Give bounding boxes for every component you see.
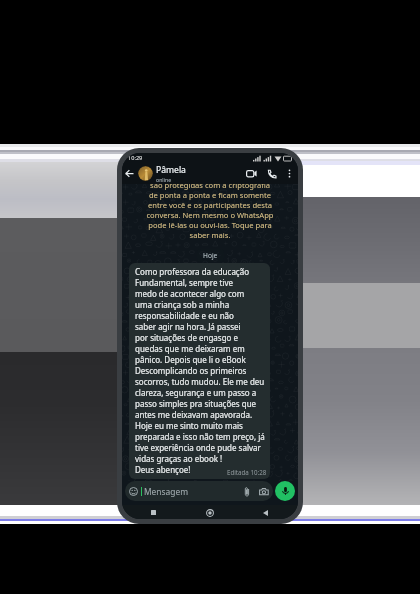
button[interactable]: Record voice message [275, 481, 295, 501]
button[interactable]: são protegidas com a criptografia de pon… [122, 180, 298, 240]
button[interactable]: Home [203, 506, 216, 519]
staticText: online [156, 176, 172, 183]
button[interactable]: Voice call [263, 165, 280, 182]
button[interactable]: More options [282, 166, 297, 181]
button[interactable]: Back [259, 506, 272, 519]
button[interactable]: Attach file [241, 486, 252, 497]
button[interactable]: Video call [243, 165, 260, 182]
button[interactable]: Profile photo [138, 166, 153, 181]
staticText: Hoje [203, 251, 218, 260]
staticText: Pâmela [156, 164, 186, 176]
staticText: Mensagem [144, 486, 188, 497]
button[interactable]: Como professora da educação Fundamental,… [129, 263, 270, 479]
staticText: 10:29 [128, 154, 143, 162]
staticText: Editada 10:28 [227, 468, 267, 476]
button[interactable]: Recent apps [147, 506, 160, 519]
button[interactable]: Pâmela [156, 164, 243, 183]
button[interactable]: Back [123, 167, 136, 180]
staticText: Como professora da educação Fundamental,… [135, 266, 265, 475]
button[interactable]: Camera [258, 486, 269, 497]
button[interactable]: Mensagem [125, 481, 273, 501]
button[interactable]: Hoje [197, 249, 224, 262]
